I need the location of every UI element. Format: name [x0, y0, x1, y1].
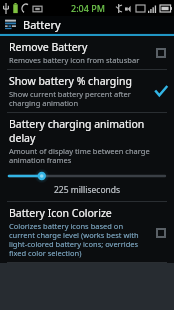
staticText: Removes battery icon from statusbar	[9, 55, 140, 65]
button[interactable]: Checked	[154, 85, 167, 98]
button[interactable]: Battery charging animation delay	[0, 113, 174, 201]
staticText: Show current battery percent after charg…	[9, 89, 131, 108]
button[interactable]: Show battery % charging	[0, 70, 174, 112]
staticText: Show battery % charging	[9, 74, 132, 88]
button[interactable]: Unchecked	[154, 46, 167, 59]
staticText: 225 milliseconds	[9, 184, 165, 196]
button[interactable]: Battery	[0, 16, 174, 33]
button[interactable]: Unchecked	[154, 226, 167, 239]
button[interactable]: Remove Battery	[0, 36, 174, 69]
staticText: Colorizes battery icons based on current…	[9, 221, 139, 258]
staticText: Battery charging animation delay	[9, 117, 165, 145]
button[interactable]: Battery Icon Colorize	[0, 202, 174, 262]
staticText: 2:04 PM	[71, 2, 105, 14]
staticText: Battery	[23, 17, 61, 32]
button[interactable]: Animation delay slider	[9, 169, 165, 183]
staticText: Remove Battery	[9, 40, 88, 54]
staticText: Amount of display time between charge an…	[9, 146, 150, 165]
staticText: Battery Icon Colorize	[9, 206, 112, 220]
